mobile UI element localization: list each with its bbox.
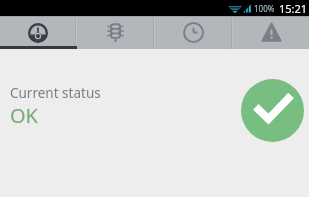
staticText: 100% bbox=[254, 3, 275, 14]
staticText: OK bbox=[10, 102, 38, 129]
button[interactable]: Schedule bbox=[155, 16, 231, 49]
staticText: Current status bbox=[10, 84, 101, 102]
button[interactable]: Traffic lights bbox=[77, 16, 153, 49]
button[interactable]: Dashboard bbox=[0, 16, 75, 49]
button[interactable]: Status OK bbox=[241, 79, 304, 142]
button[interactable]: Warnings bbox=[233, 16, 309, 49]
staticText: 15:21 bbox=[279, 1, 308, 16]
